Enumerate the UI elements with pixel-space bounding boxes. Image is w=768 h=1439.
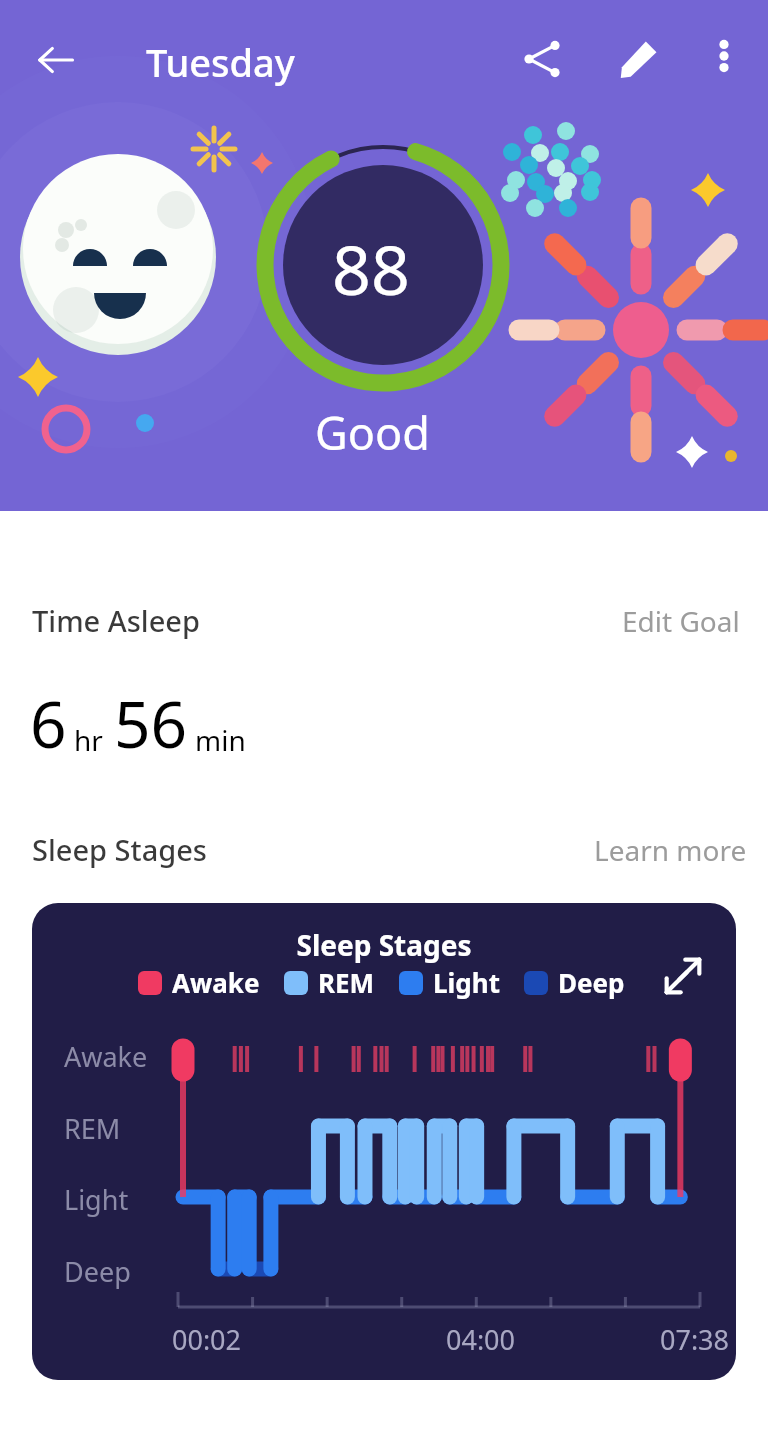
- staticText: Light: [433, 965, 500, 1000]
- button[interactable]: Sleep Stages: [32, 903, 736, 1380]
- button[interactable]: Deep: [524, 965, 625, 1000]
- staticText: Tuesday: [146, 36, 295, 88]
- button[interactable]: Light: [399, 965, 500, 1000]
- staticText: hr: [74, 721, 103, 759]
- staticText: min: [195, 721, 246, 759]
- button[interactable]: More options: [694, 26, 754, 86]
- staticText: Awake: [172, 965, 260, 1000]
- staticText: Sleep Stages: [32, 926, 736, 964]
- staticText: 04:00: [446, 1321, 516, 1358]
- staticText: Awake: [64, 1038, 148, 1075]
- staticText: Edit Goal: [622, 602, 740, 640]
- staticText: 00:02: [172, 1321, 242, 1358]
- button[interactable]: Awake: [138, 965, 260, 1000]
- staticText: Learn more: [594, 831, 747, 869]
- button[interactable]: Edit Goal: [618, 596, 744, 646]
- button[interactable]: Learn more: [590, 825, 751, 875]
- staticText: 88: [332, 222, 410, 315]
- staticText: Sleep Stages: [32, 830, 207, 869]
- staticText: Deep: [64, 1253, 131, 1290]
- button[interactable]: REM: [284, 965, 375, 1000]
- button[interactable]: Back: [24, 28, 88, 92]
- staticText: Good: [315, 402, 430, 463]
- staticText: REM: [318, 965, 375, 1000]
- button[interactable]: Share: [510, 26, 576, 92]
- staticText: 07:38: [660, 1321, 730, 1358]
- button[interactable]: Expand chart: [654, 947, 712, 1005]
- staticText: 6: [30, 680, 67, 767]
- staticText: Time Asleep: [32, 601, 200, 640]
- staticText: REM: [64, 1110, 121, 1147]
- button[interactable]: Edit: [606, 26, 672, 92]
- staticText: Light: [64, 1181, 129, 1218]
- staticText: 56: [114, 680, 188, 767]
- staticText: Deep: [558, 965, 625, 1000]
